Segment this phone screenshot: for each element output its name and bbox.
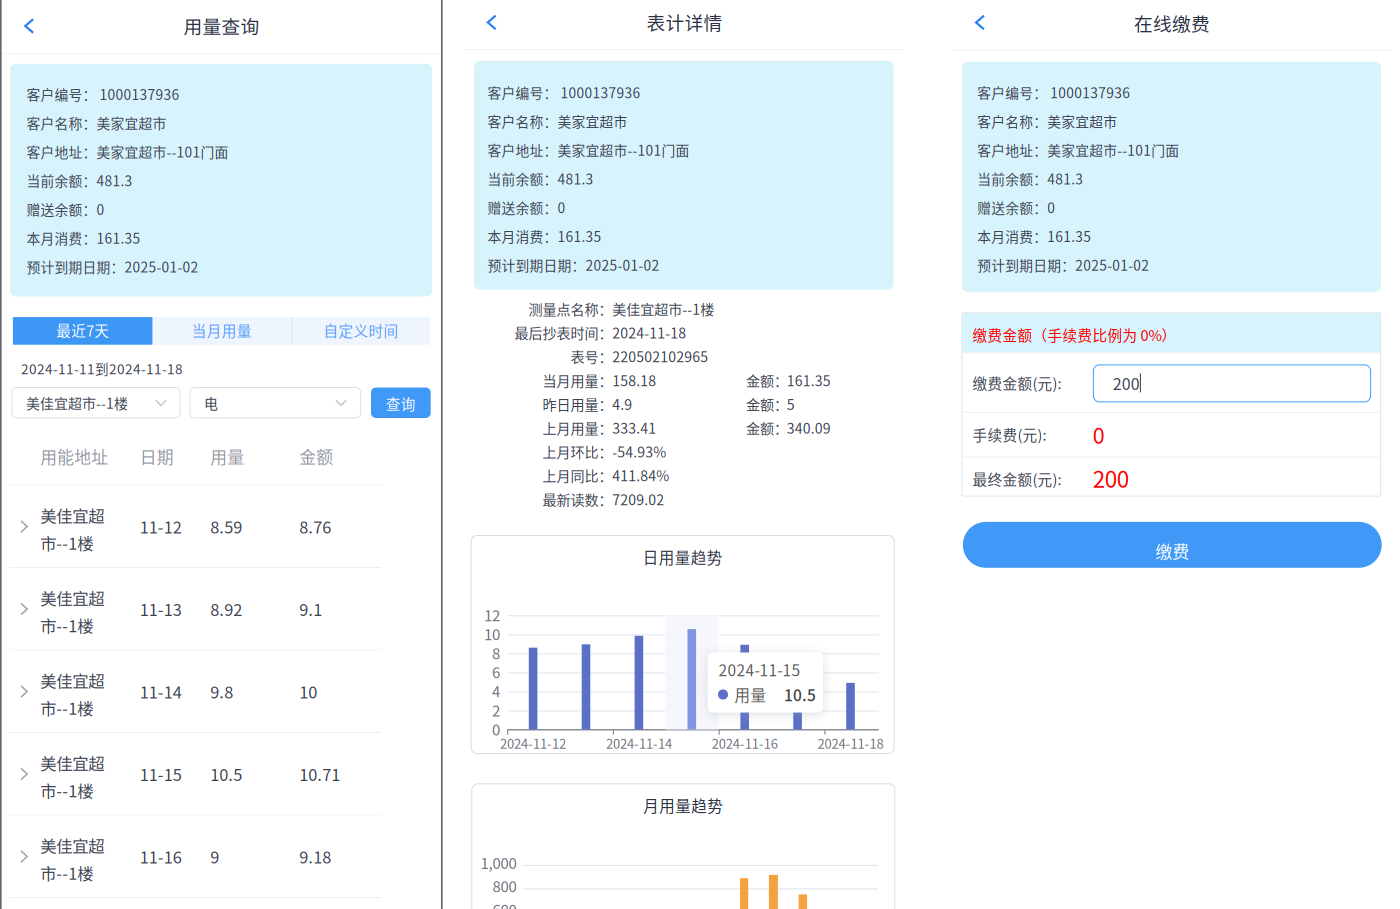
staticText: -54.93% — [612, 441, 666, 462]
staticText: 2024-11-14 — [606, 734, 672, 752]
button[interactable]: 电 — [190, 387, 361, 418]
staticText: 缴费金额(元): — [973, 372, 1062, 393]
staticText: 查询 — [386, 393, 416, 414]
staticText: 0 — [492, 718, 500, 740]
staticText: 8.92 — [210, 597, 242, 621]
staticText: 10 — [299, 679, 317, 703]
staticText: 当前余额：481.3 — [487, 168, 593, 188]
staticText: 9.1 — [299, 597, 322, 621]
staticText: 7209.02 — [612, 489, 664, 509]
staticText: 客户地址：美家宜超市--101门面 — [977, 140, 1179, 160]
staticText: 客户名称：美家宜超市 — [26, 113, 166, 133]
staticText: 预计到期日期：2025-01-02 — [977, 255, 1149, 275]
staticText: 11-14 — [140, 679, 182, 703]
staticText: 在线缴费 — [1134, 9, 1210, 36]
staticText: 最终金额(元): — [973, 468, 1062, 489]
staticText: 预计到期日期：2025-01-02 — [26, 257, 198, 277]
staticText: 金额： — [746, 394, 788, 414]
staticText: 220502102965 — [612, 346, 708, 366]
button[interactable]: 返回 — [962, 5, 998, 39]
staticText: 客户名称：美家宜超市 — [977, 111, 1117, 131]
staticText: 11-16 — [140, 844, 182, 868]
staticText: 表计详情 — [646, 8, 722, 35]
staticText: 最近7天 — [56, 319, 109, 341]
button[interactable]: 返回 — [474, 5, 510, 39]
staticText: 美佳宜超市--1楼 — [26, 393, 128, 413]
staticText: 最后抄表时间： — [515, 322, 613, 343]
staticText: 最新读数： — [543, 489, 613, 509]
staticText: 当月用量： — [543, 370, 613, 390]
staticText: 日期 — [140, 444, 174, 468]
staticText: 10.5 — [210, 762, 242, 786]
staticText: 自定义时间 — [323, 319, 398, 341]
staticText: 12 — [484, 604, 500, 625]
staticText: 2024-11-16 — [712, 734, 778, 752]
staticText: 市--1楼 — [40, 531, 93, 554]
staticText: 8 — [492, 642, 500, 664]
staticText: 赠送余额：0 — [977, 197, 1055, 217]
staticText: 预计到期日期：2025-01-02 — [487, 255, 659, 275]
staticText: 2024-11-11到2024-11-18 — [21, 358, 183, 378]
staticText: 用量 — [210, 444, 244, 468]
staticText: 美佳宜超 — [40, 751, 104, 774]
button[interactable]: 美佳宜超 — [2, 815, 441, 898]
staticText: 161.35 — [787, 370, 831, 390]
staticText: 昨日用量： — [543, 394, 613, 414]
staticText: 赠送余额：0 — [487, 197, 565, 217]
staticText: 411.84% — [612, 465, 669, 485]
staticText: 1,000 — [480, 851, 516, 873]
staticText: 2024-11-12 — [500, 734, 566, 752]
staticText: 340.09 — [787, 417, 831, 438]
staticText: 美佳宜超 — [40, 833, 104, 857]
button[interactable]: 美佳宜超市--1楼 — [12, 387, 180, 418]
staticText: 月用量趋势 — [643, 794, 723, 816]
button[interactable]: 自定义时间 — [292, 317, 430, 345]
staticText: 4.9 — [612, 394, 632, 414]
button[interactable]: 美佳宜超 — [2, 733, 441, 815]
staticText: 手续费(元): — [973, 424, 1047, 445]
staticText: 客户地址：美家宜超市--101门面 — [487, 140, 689, 160]
button[interactable]: 美佳宜超 — [2, 485, 441, 568]
staticText: 本月消费：161.35 — [977, 226, 1091, 246]
button[interactable]: 美佳宜超 — [2, 650, 441, 733]
staticText: 客户编号： 1000137936 — [977, 82, 1130, 102]
staticText: 日用量趋势 — [643, 546, 723, 568]
staticText: 10.5 — [784, 683, 816, 706]
staticText: 上月同比： — [543, 465, 613, 485]
staticText: 8.76 — [299, 514, 331, 538]
button[interactable]: 最近7天 — [13, 317, 152, 345]
staticText: 金额 — [299, 444, 333, 468]
staticText: 4 — [492, 680, 500, 702]
staticText: 客户名称：美家宜超市 — [487, 111, 627, 131]
button[interactable]: 返回 — [11, 9, 47, 43]
staticText: 市--1楼 — [40, 613, 93, 637]
staticText: 10 — [484, 623, 500, 645]
staticText: 市--1楼 — [40, 778, 93, 802]
staticText: 333.41 — [612, 417, 656, 438]
staticText: 本月消费：161.35 — [487, 226, 601, 246]
staticText: 9.18 — [299, 844, 331, 868]
staticText: 800 — [492, 875, 516, 897]
button[interactable]: 查询 — [371, 387, 431, 418]
staticText: 用量 — [734, 683, 766, 706]
staticText: 缴费 — [1155, 538, 1189, 563]
staticText: 9.8 — [210, 679, 233, 703]
staticText: 测量点名称： — [529, 298, 613, 319]
staticText: 赠送余额：0 — [26, 199, 104, 219]
staticText: 11-12 — [140, 514, 182, 538]
staticText: 200 — [1113, 371, 1140, 394]
staticText: 11-15 — [140, 762, 182, 786]
staticText: 200 — [1093, 462, 1129, 494]
staticText: 客户编号： 1000137936 — [487, 82, 640, 102]
button[interactable]: 美佳宜超 — [2, 568, 441, 650]
button[interactable]: 缴费 — [963, 522, 1382, 568]
staticText: 客户编号： 1000137936 — [26, 84, 179, 104]
button[interactable]: 当月用量 — [152, 317, 291, 345]
staticText: 2 — [492, 699, 500, 721]
staticText: 5 — [787, 394, 795, 414]
staticText: 当前余额：481.3 — [977, 168, 1083, 188]
staticText: 金额： — [746, 417, 788, 438]
staticText: 600 — [492, 898, 516, 909]
staticText: 电 — [204, 393, 218, 413]
staticText: 表号： — [571, 346, 613, 366]
